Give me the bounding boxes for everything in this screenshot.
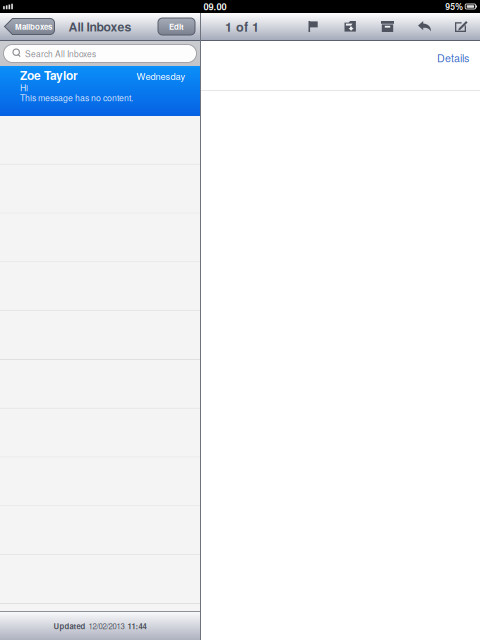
staticText: Search All Inboxes xyxy=(25,47,96,59)
button[interactable]: Archive xyxy=(369,13,406,40)
button[interactable]: Reply xyxy=(406,13,443,40)
staticText: This message has no content. xyxy=(20,91,133,104)
button[interactable]: Details xyxy=(437,41,480,65)
staticText: 12/02/2013 xyxy=(88,620,124,632)
button[interactable]: Zoe Taylor xyxy=(0,66,200,116)
staticText: Updated xyxy=(53,620,85,632)
staticText: All Inboxes xyxy=(68,18,131,35)
button[interactable]: Edit xyxy=(158,13,200,40)
staticText: Wednesday xyxy=(136,69,185,83)
button[interactable]: Search All Inboxes xyxy=(0,41,200,66)
staticText: Mailboxes xyxy=(15,21,52,32)
button[interactable]: Mailboxes xyxy=(0,13,55,40)
staticText: 11:44 xyxy=(127,620,146,632)
staticText: Edit xyxy=(169,21,184,32)
staticText: Hi xyxy=(20,81,28,94)
staticText: 95% xyxy=(445,0,463,13)
button[interactable]: Compose xyxy=(443,13,480,40)
button[interactable]: Move to folder xyxy=(332,13,369,40)
staticText: 09.00 xyxy=(204,0,227,13)
staticText: Details xyxy=(437,50,469,65)
staticText: Zoe Taylor xyxy=(20,66,78,84)
button[interactable]: Flag xyxy=(295,13,332,40)
staticText: 1 of 1 xyxy=(225,17,259,35)
